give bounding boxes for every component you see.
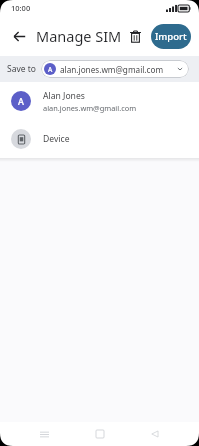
button[interactable]: Home <box>88 422 112 446</box>
staticText: Manage SIM <box>36 26 122 46</box>
staticText: alan.jones.wm@gmail.com <box>60 64 174 75</box>
button[interactable]: Delete <box>122 23 148 49</box>
button[interactable]: A <box>41 60 189 78</box>
staticText: Import <box>155 30 187 43</box>
staticText: Save to <box>7 63 36 75</box>
button[interactable]: Back <box>6 23 32 49</box>
staticText: A <box>48 65 53 74</box>
staticText: Device <box>43 133 70 145</box>
staticText: A <box>18 95 24 107</box>
button[interactable]: Import <box>151 24 191 49</box>
staticText: 10:00 <box>11 3 31 13</box>
button[interactable]: Recent apps <box>32 422 56 446</box>
button[interactable]: Back <box>143 422 167 446</box>
staticText: Alan Jones <box>43 90 85 102</box>
staticText: alan.jones.wm@gmail.com <box>43 103 137 113</box>
button[interactable]: A <box>0 82 199 120</box>
button[interactable]: Device <box>0 120 199 158</box>
